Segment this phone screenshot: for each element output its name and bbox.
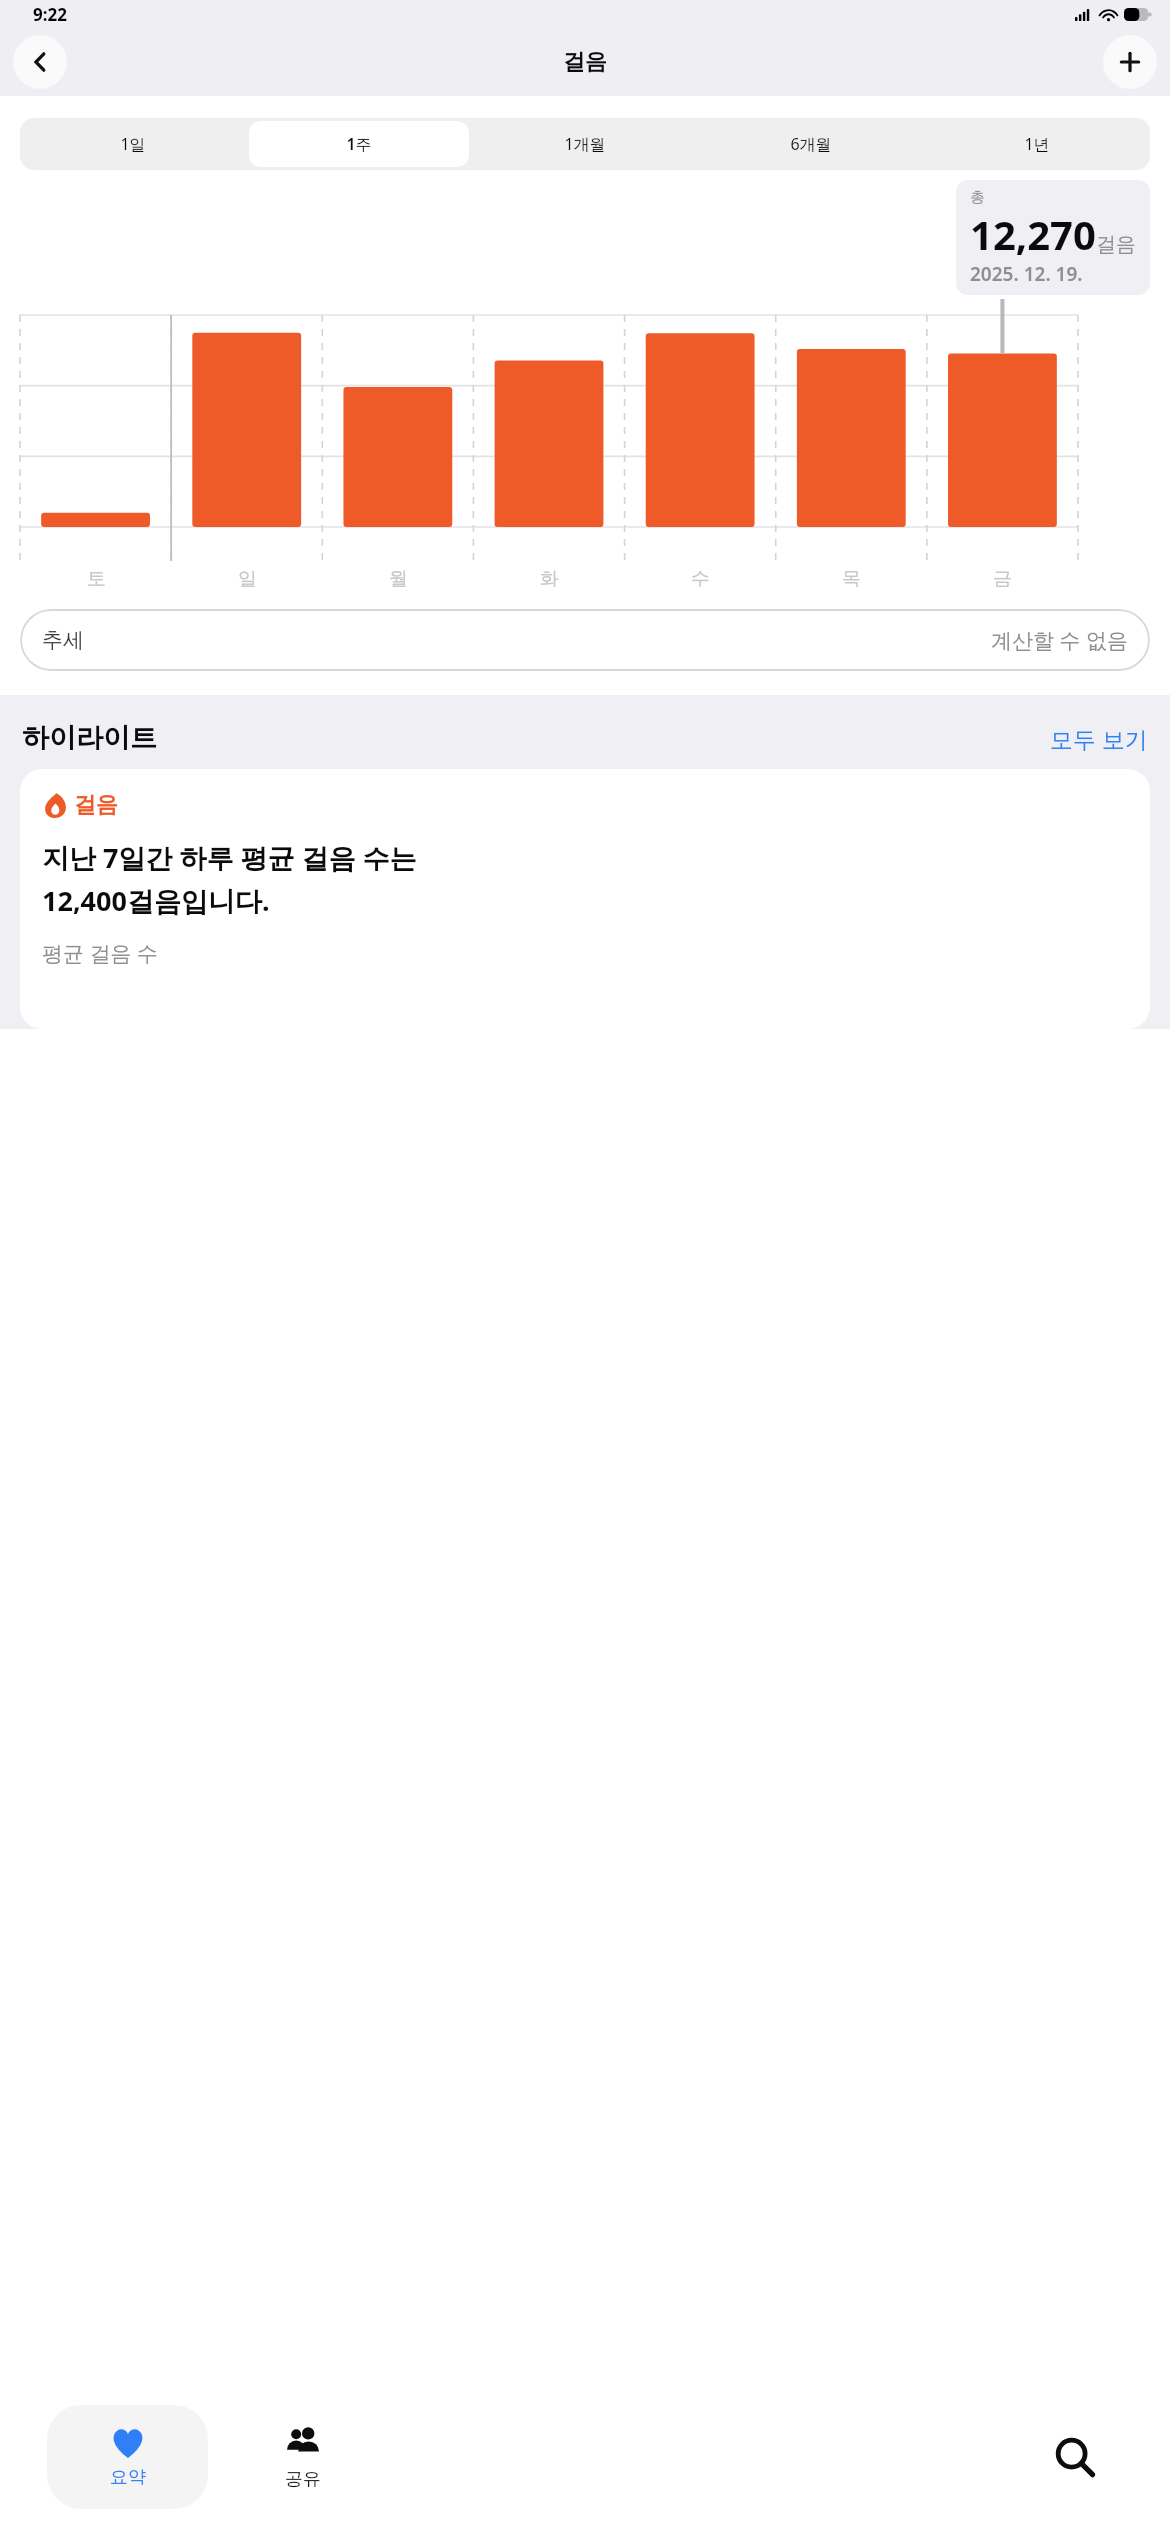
- staticText: 목: [842, 567, 861, 591]
- staticText: 일: [238, 567, 257, 591]
- staticText: 12,400걸음입니다.: [42, 882, 270, 919]
- staticText: 2025. 12. 19.: [970, 261, 1083, 287]
- staticText: 하이라이트: [22, 721, 157, 755]
- staticText: 화: [540, 567, 559, 591]
- staticText: 총: [970, 188, 985, 207]
- button[interactable]: 1일: [23, 121, 243, 167]
- button[interactable]: Search: [1020, 2402, 1130, 2512]
- staticText: 걸음: [1096, 232, 1136, 257]
- staticText: 1년: [1024, 133, 1050, 155]
- button[interactable]: 6개월: [701, 121, 921, 167]
- staticText: 6개월: [790, 133, 832, 155]
- staticText: 금: [993, 567, 1012, 591]
- button[interactable]: Add: [1103, 35, 1157, 89]
- staticText: 토: [87, 567, 106, 591]
- staticText: 12,270: [970, 207, 1096, 261]
- button[interactable]: 1주: [249, 121, 469, 167]
- staticText: 1주: [346, 133, 372, 155]
- button[interactable]: 요약: [47, 2405, 208, 2509]
- staticText: 9:22: [33, 3, 67, 26]
- button[interactable]: 공유: [215, 2398, 390, 2516]
- button[interactable]: Back: [13, 35, 67, 89]
- staticText: 1개월: [564, 133, 606, 155]
- button[interactable]: 걸음: [20, 769, 1150, 1029]
- staticText: 수: [691, 567, 710, 591]
- staticText: 월: [389, 567, 408, 591]
- button[interactable]: 1년: [927, 121, 1147, 167]
- staticText: 걸음: [563, 48, 607, 76]
- button[interactable]: 모두 보기: [1050, 723, 1148, 754]
- staticText: 지난 7일간 하루 평균 걸음 수는: [42, 839, 417, 876]
- staticText: 모두 보기: [1050, 723, 1148, 754]
- staticText: 1일: [120, 133, 146, 155]
- button[interactable]: 추세: [20, 609, 1150, 671]
- staticText: 계산할 수 없음: [991, 626, 1128, 655]
- button[interactable]: 1개월: [475, 121, 695, 167]
- staticText: 공유: [285, 2468, 321, 2491]
- staticText: 걸음: [74, 791, 118, 819]
- staticText: 평균 걸음 수: [42, 939, 158, 968]
- staticText: 요약: [110, 2466, 146, 2489]
- staticText: 추세: [42, 627, 84, 653]
